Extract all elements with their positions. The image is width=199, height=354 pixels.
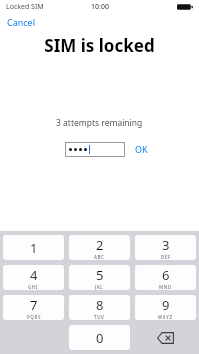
staticText: 3 attempts remaining	[56, 117, 143, 129]
button[interactable]: 8	[69, 295, 130, 320]
button[interactable]: 6	[135, 265, 196, 290]
button[interactable]: 9	[135, 295, 196, 320]
button[interactable]: 2	[69, 235, 130, 260]
staticText: 8	[96, 296, 104, 314]
staticText: 9	[162, 296, 170, 314]
staticText: Cancel	[7, 16, 36, 28]
staticText: 10:00	[91, 2, 109, 12]
button[interactable]: 0	[69, 325, 130, 350]
staticText: 2	[96, 236, 104, 254]
staticText: MNO	[159, 284, 172, 290]
staticText: DEF	[161, 254, 171, 260]
staticText: ABC	[94, 254, 105, 260]
staticText: 4	[30, 266, 38, 284]
staticText: 0	[96, 329, 104, 347]
button[interactable]: OK	[133, 141, 150, 157]
button[interactable]: 4	[3, 265, 64, 290]
staticText: WXYZ	[158, 314, 173, 320]
button[interactable]: Delete	[135, 325, 196, 350]
button[interactable]: 7	[3, 295, 64, 320]
button[interactable]	[65, 142, 125, 157]
staticText: Locked SIM	[6, 2, 44, 12]
button[interactable]: 3	[135, 235, 196, 260]
staticText: 5	[96, 266, 104, 284]
button[interactable]: 5	[69, 265, 130, 290]
staticText: PQRS	[27, 314, 41, 320]
staticText: TUV	[94, 314, 105, 320]
staticText: 3	[162, 236, 170, 254]
button[interactable]: 1	[3, 235, 64, 260]
staticText: 6	[162, 266, 170, 284]
staticText: 7	[30, 296, 38, 314]
staticText: OK	[135, 143, 148, 155]
staticText: 1	[30, 239, 38, 257]
staticText: SIM is locked	[44, 34, 155, 57]
staticText: GHI	[28, 284, 39, 290]
staticText: JKL	[95, 284, 104, 290]
button[interactable]: Cancel	[5, 15, 38, 29]
